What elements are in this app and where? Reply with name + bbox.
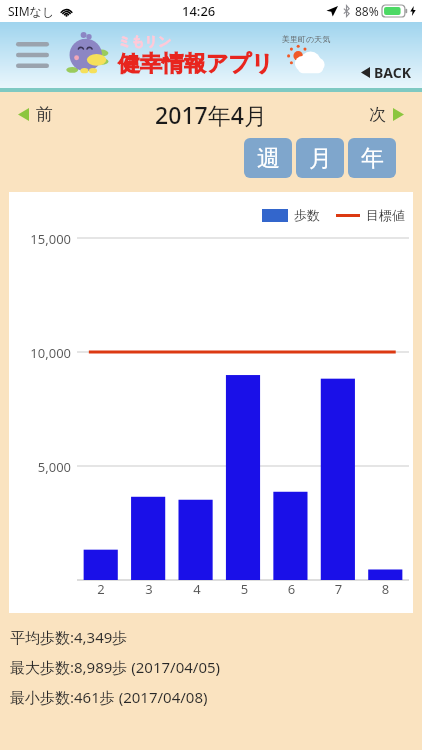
staticText: 6: [268, 580, 315, 598]
button[interactable]: 歩数: [9, 192, 413, 613]
button[interactable]: 年: [348, 138, 396, 178]
staticText: 平均歩数:4,349歩: [10, 627, 128, 647]
staticText: 年: [361, 144, 384, 173]
staticText: 5: [221, 580, 268, 598]
staticText: SIMなし: [8, 3, 55, 19]
staticText: 5,000: [21, 458, 71, 476]
staticText: 15,000: [21, 230, 71, 248]
staticText: 最大歩数:8,989歩 (2017/04/05): [10, 657, 221, 677]
staticText: 歩数: [294, 207, 320, 223]
button[interactable]: 次: [369, 104, 404, 125]
staticText: 4: [173, 580, 221, 598]
button[interactable]: 前: [18, 104, 53, 125]
button[interactable]: 美里町の天気: [282, 34, 331, 77]
staticText: 3: [125, 580, 173, 598]
staticText: 7: [315, 580, 362, 598]
staticText: 次: [369, 104, 386, 125]
staticText: 10,000: [21, 344, 71, 362]
staticText: 美里町の天気: [282, 34, 331, 44]
button[interactable]: 週: [244, 138, 292, 178]
staticText: BACK: [374, 63, 412, 82]
button[interactable]: BACK: [361, 63, 412, 82]
staticText: 目標値: [366, 207, 405, 223]
staticText: ミもリン: [118, 33, 172, 49]
staticText: 2: [77, 580, 125, 598]
staticText: 週: [257, 144, 280, 173]
button[interactable]: Menu: [15, 41, 49, 69]
button[interactable]: ミもリン: [62, 28, 274, 82]
staticText: 月: [309, 144, 332, 173]
staticText: 健幸情報アプリ: [118, 50, 274, 78]
staticText: 8: [362, 580, 409, 598]
staticText: 最小歩数:461歩 (2017/04/08): [10, 687, 208, 707]
staticText: 2017年4月: [155, 99, 267, 130]
staticText: 88%: [355, 3, 379, 19]
button[interactable]: 月: [296, 138, 344, 178]
staticText: 前: [36, 104, 53, 125]
staticText: 14:26: [182, 2, 216, 20]
